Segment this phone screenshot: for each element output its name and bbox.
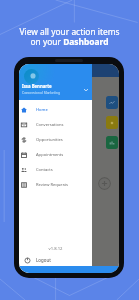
- staticText: Opportunities: [36, 137, 63, 143]
- staticText: Conversations: [36, 122, 64, 128]
- button[interactable]: Review Requests: [19, 177, 92, 192]
- button[interactable]: Logout: [19, 255, 92, 265]
- button[interactable]: Appointments: [19, 147, 92, 162]
- staticText: View all your action items on your Dashb…: [3, 26, 136, 47]
- button[interactable]: Stat card: [106, 116, 118, 129]
- staticText: Conversional Marketing: [22, 90, 61, 95]
- button[interactable]: Home: [19, 102, 92, 117]
- staticText: Issa Bennarte: [22, 83, 52, 89]
- button[interactable]: Stat card: [106, 136, 118, 149]
- staticText: Home: [36, 107, 48, 113]
- staticText: Logout: [36, 257, 51, 263]
- staticText: Review Requests: [36, 182, 69, 188]
- button[interactable]: Conversations: [19, 117, 92, 132]
- button[interactable]: Opportunities: [19, 132, 92, 147]
- staticText: v1.8.12: [19, 246, 92, 252]
- staticText: Appointments: [36, 152, 64, 158]
- button[interactable]: Contacts: [19, 162, 92, 177]
- button[interactable]: Profile: [24, 69, 39, 84]
- staticText: Contacts: [36, 167, 53, 173]
- button[interactable]: Add: [98, 177, 111, 190]
- button[interactable]: Stat card: [106, 96, 118, 109]
